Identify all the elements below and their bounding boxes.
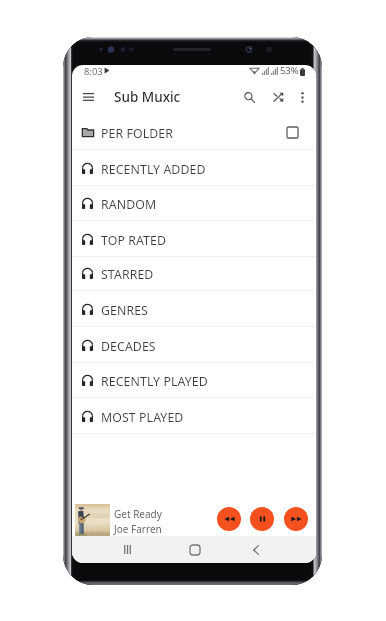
staticText: RANDOM xyxy=(101,196,157,213)
button[interactable]: More options xyxy=(292,87,312,107)
staticText: RECENTLY PLAYED xyxy=(101,373,208,390)
button[interactable]: RECENTLY PLAYED xyxy=(72,362,316,398)
staticText: 8:03 xyxy=(84,65,103,78)
staticText: Get Ready xyxy=(114,507,162,521)
button[interactable]: Home xyxy=(175,536,215,563)
staticText: TOP RATED xyxy=(101,232,167,249)
staticText: GENRES xyxy=(101,302,148,319)
button[interactable]: TOP RATED xyxy=(72,221,316,257)
button[interactable]: Shuffle xyxy=(267,86,289,108)
button[interactable]: Navigation menu xyxy=(77,86,99,108)
staticText: 53% xyxy=(280,65,299,77)
button[interactable]: Pause xyxy=(250,507,274,531)
button[interactable]: Rewind xyxy=(217,507,241,531)
button[interactable]: RECENTLY ADDED xyxy=(72,150,316,186)
button[interactable]: STARRED xyxy=(72,256,316,291)
button[interactable]: PER FOLDER xyxy=(72,114,316,150)
button[interactable]: DECADES xyxy=(72,327,316,363)
button[interactable]: RANDOM xyxy=(72,185,316,221)
button[interactable]: Search xyxy=(238,86,260,108)
button[interactable]: MOST PLAYED xyxy=(72,398,316,434)
button[interactable]: Recent apps xyxy=(107,536,147,563)
staticText: RECENTLY ADDED xyxy=(101,161,206,178)
staticText: PER FOLDER xyxy=(101,125,174,142)
button[interactable]: GENRES xyxy=(72,291,316,327)
button[interactable]: Fast forward xyxy=(284,507,308,531)
staticText: MOST PLAYED xyxy=(101,409,184,426)
staticText: Sub Muxic xyxy=(114,88,181,106)
staticText: STARRED xyxy=(101,266,154,283)
staticText: DECADES xyxy=(101,338,156,355)
button[interactable]: Back xyxy=(236,536,276,563)
staticText: Joe Farren xyxy=(114,522,162,536)
